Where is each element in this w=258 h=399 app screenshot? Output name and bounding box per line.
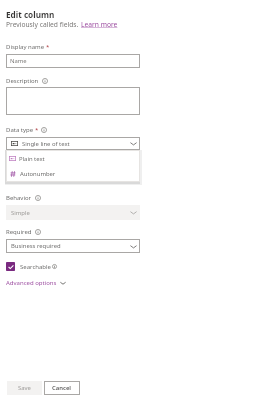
button[interactable]: Business required [6,239,140,253]
staticText: Advanced options [6,279,57,287]
button[interactable]: Name [6,54,140,68]
button[interactable]: Plain text [6,151,140,166]
staticText: Previously called fields. [6,20,81,29]
staticText: * [35,126,39,134]
staticText: Description [6,77,39,85]
button[interactable]: Searchable [6,262,57,271]
button[interactable]: Single line of text [6,137,140,150]
staticText: Single line of text [22,140,70,148]
button[interactable]: Cancel [44,381,80,395]
button[interactable]: Advanced options [6,279,66,287]
staticText: Searchable [20,263,51,271]
staticText: Display name [6,43,45,51]
staticText: Business required [11,242,61,250]
staticText: Behavior [6,194,32,202]
button[interactable]: Learn more [81,20,118,29]
staticText: Autonumber [20,170,56,178]
button[interactable]: Autonumber [6,166,140,181]
staticText: Name [10,57,27,65]
staticText: Required [6,228,32,236]
staticText: Data type [6,126,34,134]
button[interactable] [6,87,140,115]
staticText: Simple [11,209,30,217]
staticText: * [46,43,50,51]
button[interactable]: Save [7,381,42,395]
staticText: Save [18,384,31,392]
staticText: Cancel [52,384,72,392]
staticText: Plain text [19,155,45,163]
staticText: Edit column [6,9,55,20]
